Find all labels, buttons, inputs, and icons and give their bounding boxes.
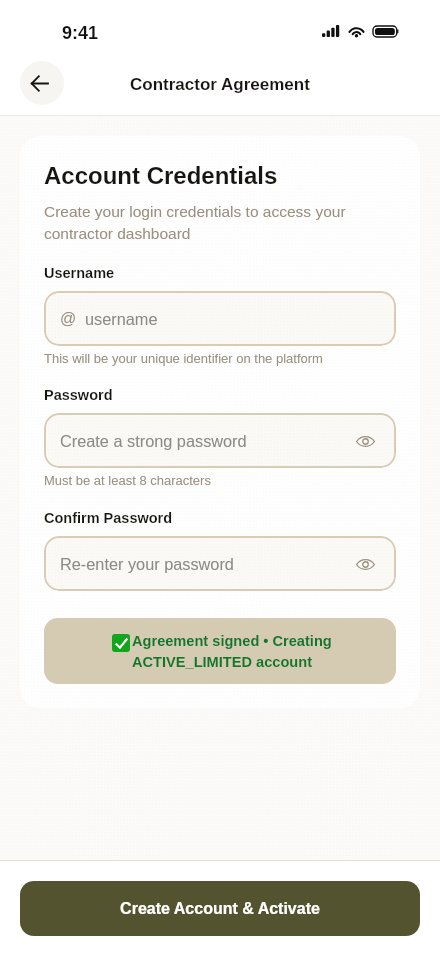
- staticText: Confirm Password: [44, 510, 173, 526]
- button[interactable]: Re-enter your password: [44, 536, 396, 591]
- button[interactable]: Create Account & Activate: [20, 881, 420, 936]
- staticText: Account Credentials: [44, 162, 278, 189]
- button[interactable]: Show password: [353, 552, 377, 576]
- staticText: 9:41: [62, 23, 99, 43]
- staticText: username: [85, 310, 377, 328]
- staticText: This will be your unique identifier on t…: [44, 351, 323, 366]
- button[interactable]: Back: [20, 61, 64, 105]
- staticText: Create Account & Activate: [120, 900, 320, 918]
- button[interactable]: @: [44, 291, 396, 346]
- staticText: Contractor Agreement: [130, 75, 310, 94]
- staticText: Create a strong password: [60, 432, 353, 450]
- staticText: @: [60, 310, 77, 328]
- button[interactable]: Show password: [353, 429, 377, 453]
- staticText: Must be at least 8 characters: [44, 473, 211, 488]
- button[interactable]: Create a strong password: [44, 413, 396, 468]
- staticText: Create your login credentials to access …: [44, 203, 396, 242]
- staticText: Username: [44, 265, 115, 281]
- staticText: Agreement signed • Creating ACTIVE_LIMIT…: [132, 633, 332, 670]
- staticText: Password: [44, 387, 113, 403]
- staticText: Re-enter your password: [60, 555, 353, 573]
